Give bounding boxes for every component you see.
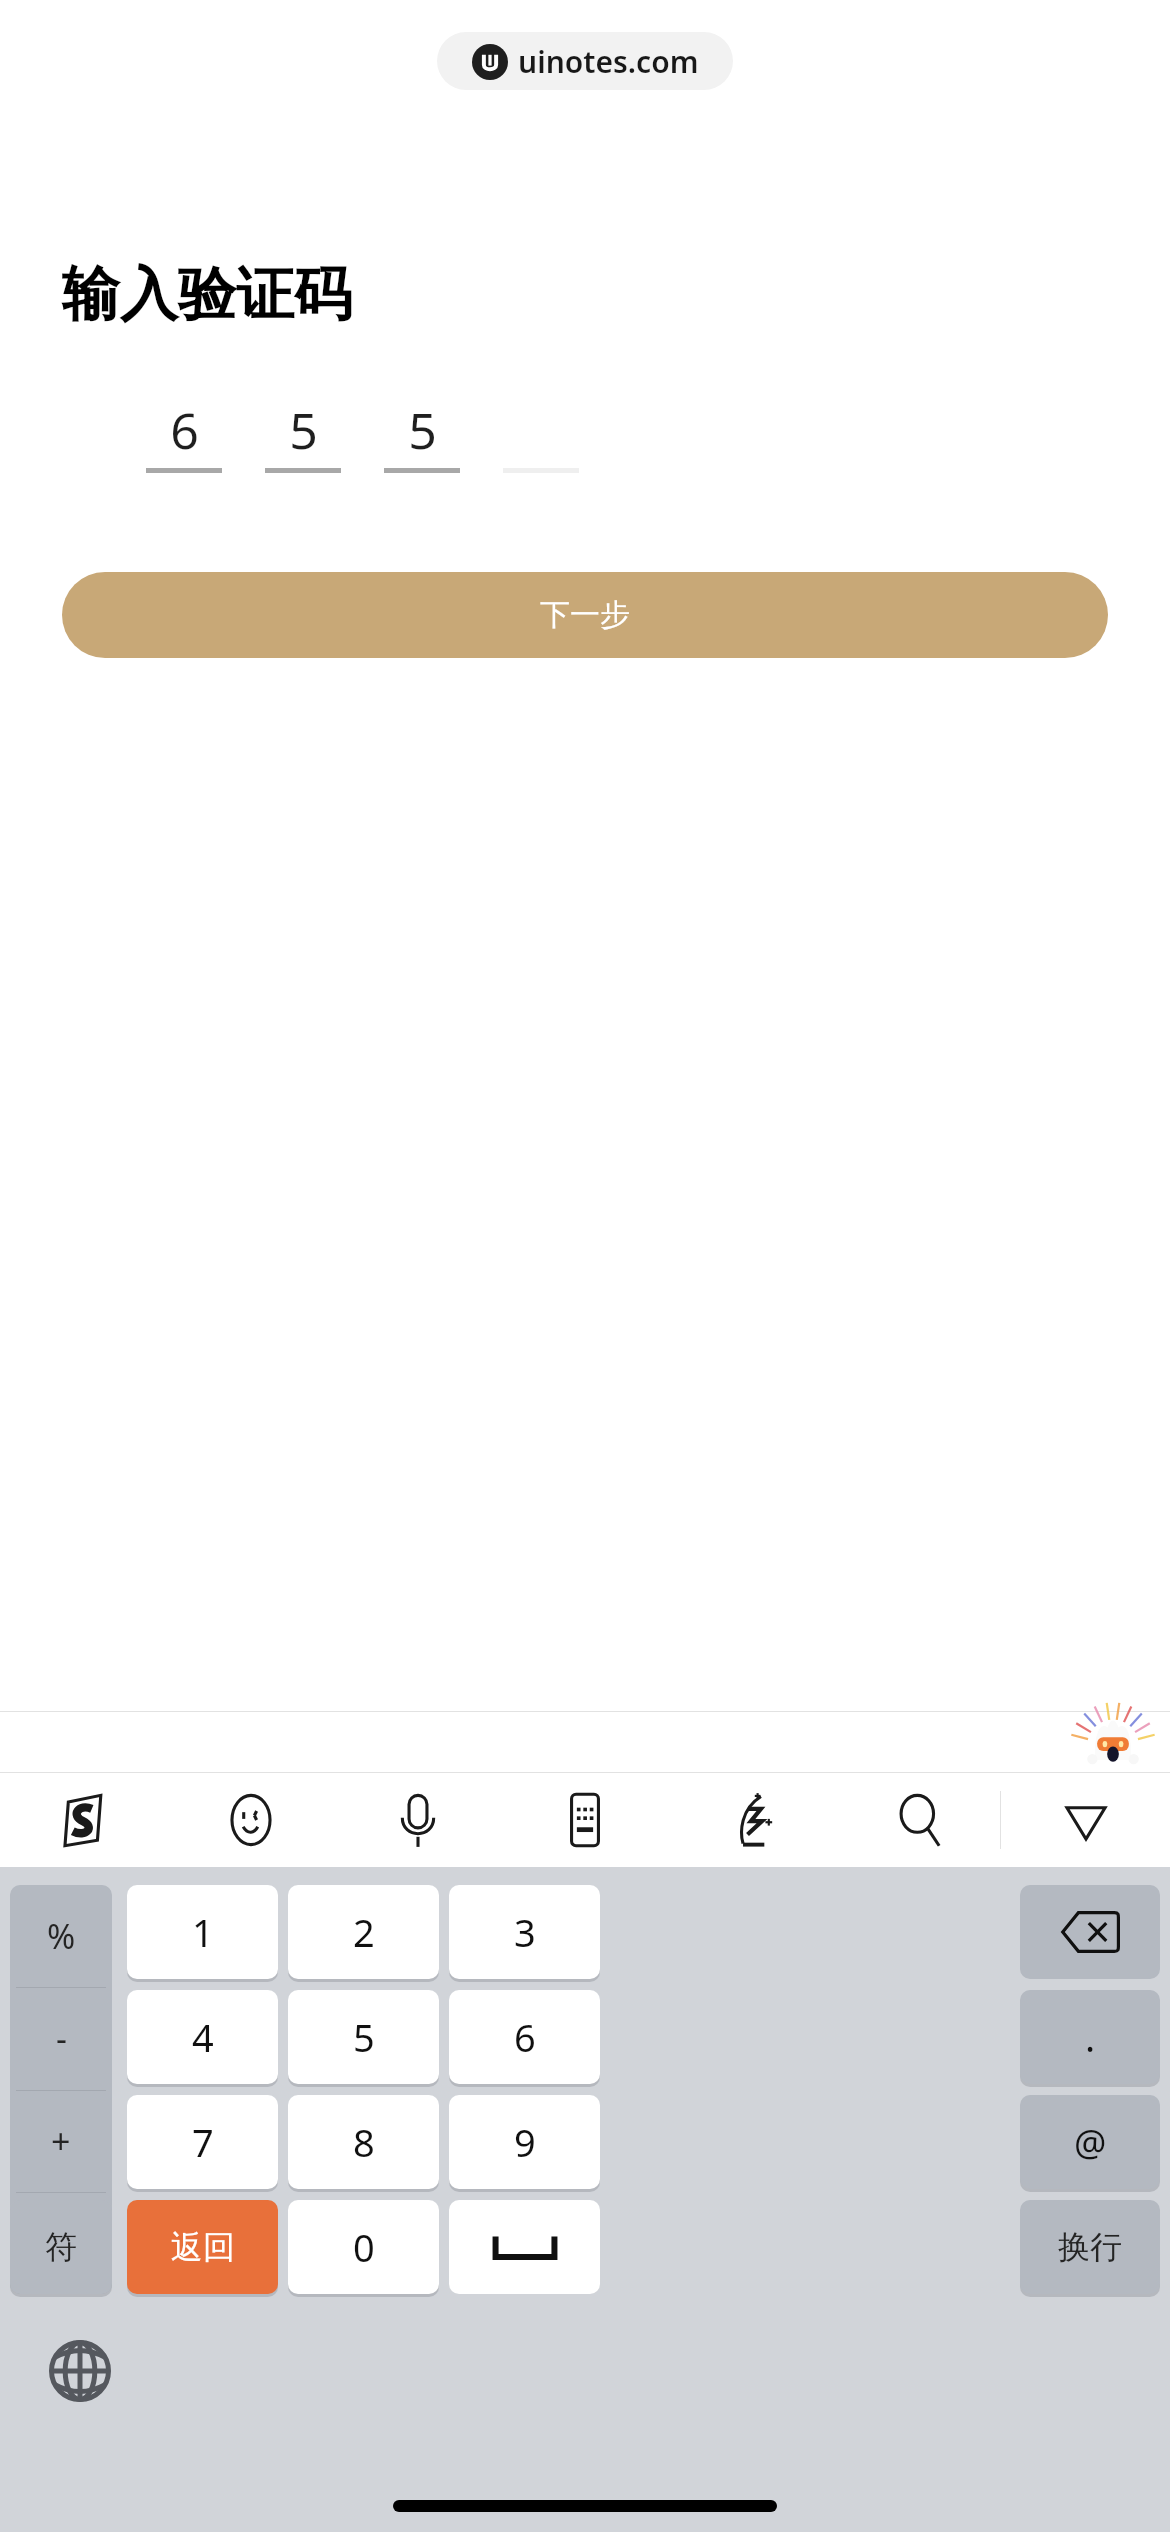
button[interactable]: Search [863, 1781, 975, 1859]
staticText: 换行 [1058, 2227, 1122, 2267]
button[interactable]: Handwriting [696, 1781, 808, 1859]
button[interactable]: . [1020, 1990, 1160, 2084]
button[interactable]: Space [449, 2200, 600, 2294]
staticText: - [56, 2015, 67, 2061]
button[interactable]: 7 [127, 2095, 278, 2189]
button[interactable]: 4 [127, 1990, 278, 2084]
button[interactable]: × [10, 2192, 112, 2294]
button[interactable]: Sogou keyboard [28, 1781, 140, 1859]
staticText: % [47, 1913, 76, 1959]
button[interactable]: 8 [288, 2095, 439, 2189]
button[interactable]: 6 [146, 396, 222, 473]
staticText: 8 [353, 2116, 375, 2168]
button[interactable]: 0 [288, 2200, 439, 2294]
button[interactable]: 5 [265, 396, 341, 473]
staticText: 符 [45, 2227, 77, 2267]
button[interactable]: Hide keyboard [1030, 1781, 1142, 1859]
staticText: 6 [170, 396, 199, 458]
staticText: . [1085, 2011, 1096, 2063]
staticText: 2 [353, 1906, 375, 1958]
button[interactable]: 符 [10, 2200, 112, 2294]
button[interactable]: 返回 [127, 2200, 278, 2294]
staticText: @ [1074, 2118, 1107, 2167]
button[interactable]: Keyboard layout [529, 1781, 641, 1859]
button[interactable]: 下一步 [62, 572, 1108, 658]
button[interactable]: Switch language [38, 2329, 122, 2413]
staticText: 7 [192, 2116, 214, 2168]
button[interactable]: 5 [384, 396, 460, 473]
button[interactable]: @ [1020, 2095, 1160, 2189]
button[interactable]: 6 [449, 1990, 600, 2084]
staticText: 5 [289, 396, 318, 458]
button[interactable] [503, 396, 579, 473]
staticText: × [51, 2220, 71, 2266]
staticText: 返回 [171, 2227, 235, 2267]
staticText: 0 [353, 2221, 375, 2273]
button[interactable]: 1 [127, 1885, 278, 1979]
staticText: uinotes.com [518, 41, 699, 82]
button[interactable]: Backspace [1020, 1885, 1160, 1979]
button[interactable]: 3 [449, 1885, 600, 1979]
button[interactable]: 2 [288, 1885, 439, 1979]
staticText: 下一步 [540, 596, 630, 634]
staticText: 9 [514, 2116, 536, 2168]
staticText: 3 [514, 1906, 536, 1958]
button[interactable]: 换行 [1020, 2200, 1160, 2294]
staticText: 5 [408, 396, 437, 458]
button[interactable]: 9 [449, 2095, 600, 2189]
button[interactable]: + [10, 2090, 112, 2192]
button[interactable]: % [10, 1885, 112, 1987]
button[interactable]: Voice input [362, 1781, 474, 1859]
staticText: + [51, 2118, 71, 2164]
button[interactable]: - [10, 1987, 112, 2089]
staticText: 6 [514, 2011, 536, 2063]
button[interactable]: Sticker [1070, 1713, 1156, 1771]
staticText: 1 [192, 1906, 214, 1958]
staticText: 输入验证码 [62, 258, 352, 331]
staticText: 5 [353, 2011, 375, 2063]
button[interactable]: Emoji [195, 1781, 307, 1859]
staticText: 4 [192, 2011, 214, 2063]
button[interactable]: 5 [288, 1990, 439, 2084]
